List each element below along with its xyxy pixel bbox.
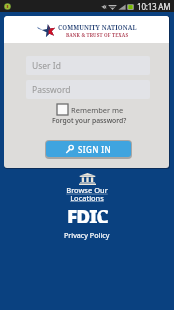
button[interactable]: User Id (26, 56, 150, 75)
other: Browse Our Locations (79, 173, 96, 185)
button[interactable]: Privacy Policy (64, 230, 110, 240)
button[interactable]: Browse Our Locations (66, 173, 108, 203)
staticText: User Id (32, 60, 61, 72)
button[interactable]: Remember me (57, 104, 124, 115)
button[interactable]: Forgot your password? (52, 116, 127, 125)
staticText: Password (32, 84, 71, 96)
staticText: BANK & TRUST OF TEXAS (66, 32, 129, 38)
button[interactable]: SIGN IN (46, 141, 131, 157)
staticText: SIGN IN (78, 144, 112, 155)
staticText: COMMUNITY NATIONAL (58, 23, 137, 31)
staticText: Remember me (71, 105, 124, 115)
button[interactable]: Password (26, 80, 150, 99)
staticText: Browse Our Locations (66, 185, 108, 203)
staticText: 10:13 AM (137, 1, 171, 12)
staticText: FDIC (67, 204, 108, 223)
